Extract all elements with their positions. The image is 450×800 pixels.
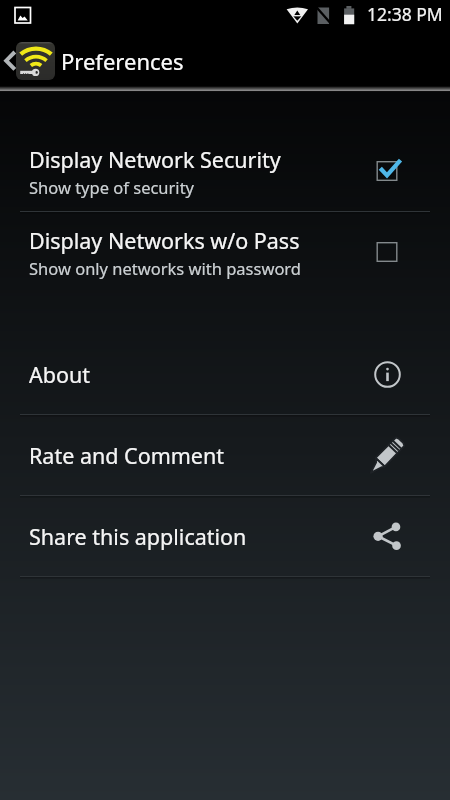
button[interactable]: Display Network Security bbox=[0, 131, 450, 211]
staticText: Display Networks w/o Pass bbox=[29, 226, 300, 255]
button[interactable]: Display Networks w/o Pass bbox=[0, 212, 450, 292]
other: About bbox=[374, 361, 401, 388]
button[interactable]: Share this application bbox=[0, 496, 450, 576]
button[interactable]: About bbox=[0, 334, 450, 414]
other: Share this application bbox=[373, 522, 401, 550]
staticText: Preferences bbox=[61, 46, 184, 76]
staticText: Share this application bbox=[29, 522, 366, 551]
button[interactable]: Navigate up bbox=[1, 30, 19, 92]
button[interactable]: Rate and Comment bbox=[0, 415, 450, 495]
staticText: Rate and Comment bbox=[29, 441, 366, 470]
staticText: Display Network Security bbox=[29, 145, 281, 174]
staticText: Show type of security bbox=[29, 176, 194, 198]
staticText: 12:38 PM bbox=[367, 2, 443, 26]
other: Rate and Comment bbox=[366, 434, 408, 476]
staticText: About bbox=[29, 360, 366, 389]
staticText: Show only networks with password bbox=[29, 257, 302, 279]
